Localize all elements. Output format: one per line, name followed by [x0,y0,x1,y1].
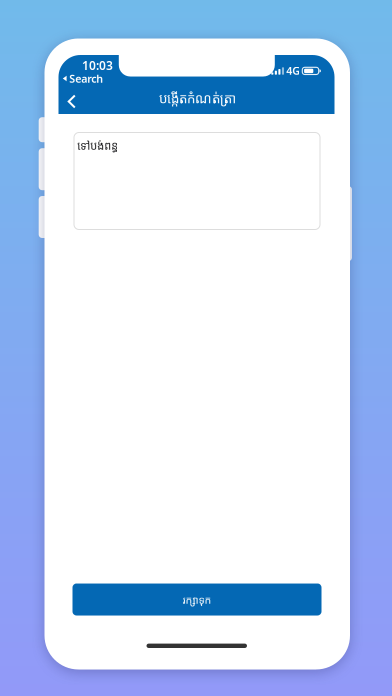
staticText: 4G [286,63,300,78]
staticText: ទៅបង់ពន្ធ [77,138,118,153]
staticText: 10:03 [82,57,113,73]
staticText: រក្សាទុក [182,592,211,607]
staticText: Search [69,71,103,86]
button[interactable]: រក្សាទុក [72,583,321,615]
staticText: បង្កើតកំណត់ត្រា [159,89,236,107]
button[interactable]: Back [58,83,97,120]
